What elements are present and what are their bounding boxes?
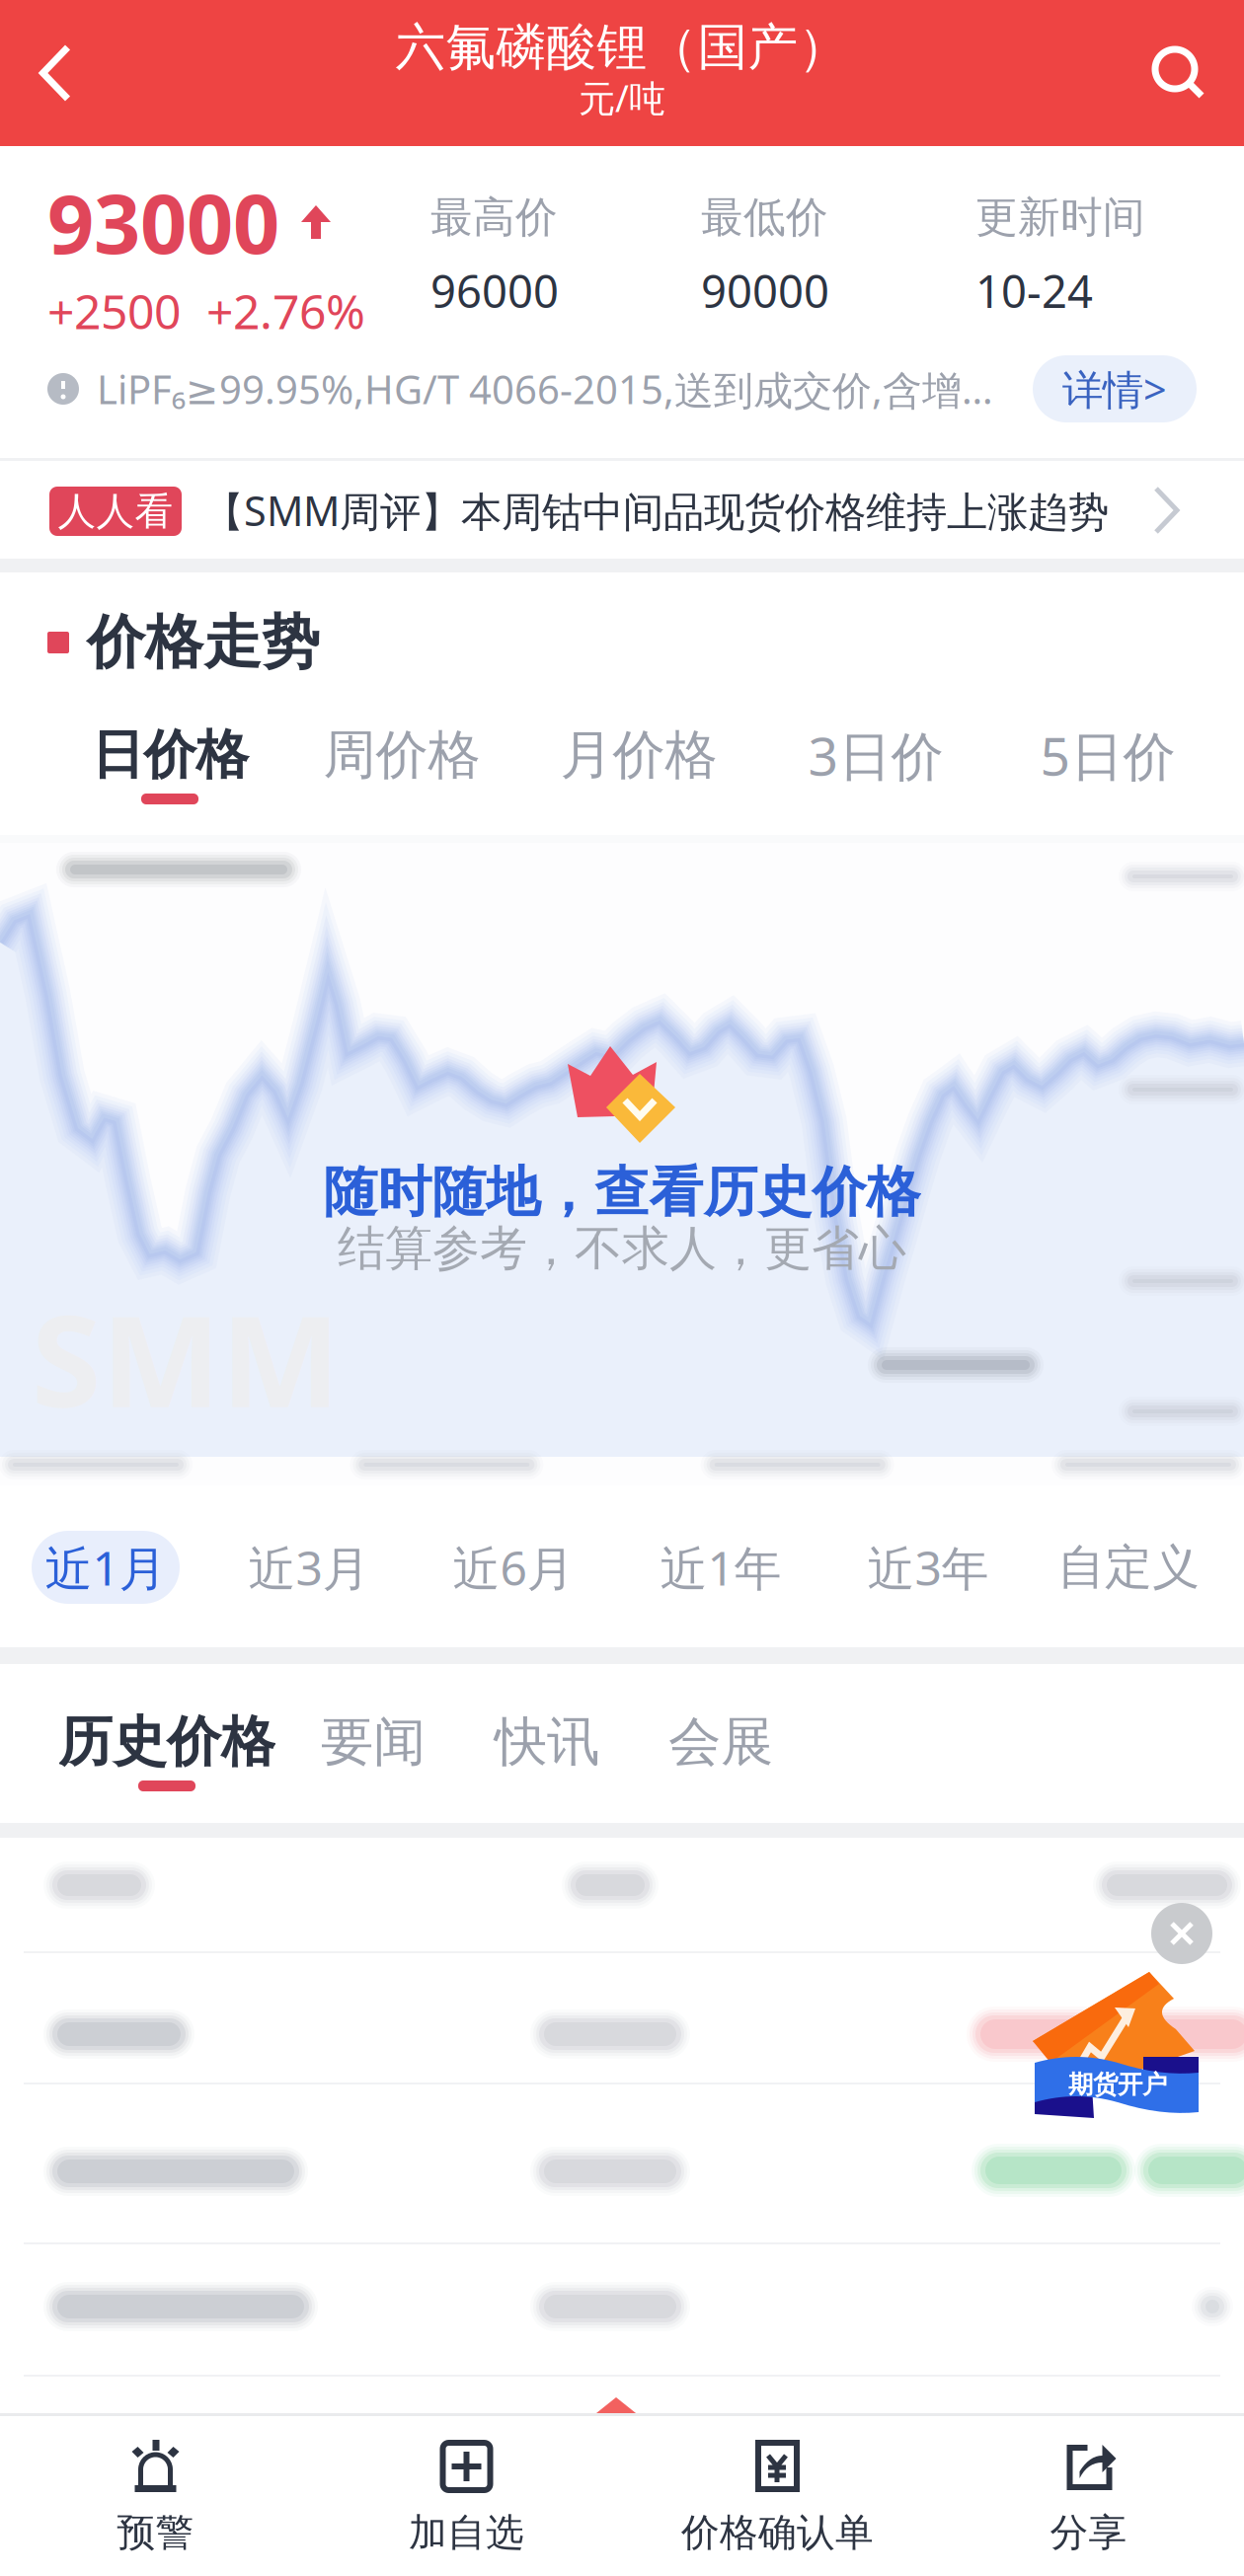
button[interactable]: 加自选 xyxy=(311,2416,622,2576)
staticText: 自定义 xyxy=(1057,1538,1200,1596)
staticText: 近6月 xyxy=(453,1536,574,1599)
staticText: 价格走势 xyxy=(87,607,320,678)
staticText: 预警 xyxy=(117,2509,194,2556)
button[interactable]: 分享 xyxy=(933,2416,1244,2576)
button[interactable]: 详情> xyxy=(1033,355,1197,422)
staticText: 近3年 xyxy=(867,1536,989,1599)
button[interactable]: 近3年 xyxy=(854,1531,1002,1604)
staticText: 历史价格 xyxy=(58,1709,275,1775)
button[interactable]: 月价格 xyxy=(530,726,747,811)
staticText: 元/吨 xyxy=(579,73,665,122)
staticText: 结算参考，不求人，更省心 xyxy=(338,1219,906,1278)
staticText: 10-24 xyxy=(975,261,1093,320)
staticText: +2500 xyxy=(47,279,181,342)
staticText: 5日价 xyxy=(1040,720,1175,790)
staticText: 月价格 xyxy=(560,723,717,787)
staticText: 要闻 xyxy=(321,1710,426,1774)
staticText: 价格确认单 xyxy=(681,2509,874,2556)
staticText: 六氟磷酸锂（国产） xyxy=(395,17,849,78)
staticText: 93000 xyxy=(47,168,279,276)
staticText: 【SMM周评】本周钴中间品现货价格维持上涨趋势 xyxy=(203,483,1109,537)
staticText: 最高价 xyxy=(430,191,558,243)
button[interactable]: 快讯 xyxy=(478,1713,616,1798)
button[interactable]: 3日价 xyxy=(767,726,984,811)
staticText: 近1月 xyxy=(45,1536,166,1599)
button[interactable]: Back xyxy=(0,0,111,146)
staticText: 加自选 xyxy=(409,2509,524,2556)
staticText: 人人看 xyxy=(58,488,173,535)
staticText: 周价格 xyxy=(323,723,480,787)
button[interactable]: 近6月 xyxy=(439,1531,587,1604)
staticText: 最低价 xyxy=(701,191,828,243)
staticText: 90000 xyxy=(701,261,829,320)
button[interactable]: 价格确认单 xyxy=(622,2416,933,2576)
staticText: 会展 xyxy=(668,1710,773,1774)
button[interactable]: 要闻 xyxy=(304,1713,442,1798)
button[interactable]: 近1月 xyxy=(32,1531,180,1604)
staticText: LiPF₆≥99.95%,HG/T 4066-2015,送到成交价,含增… xyxy=(97,363,993,415)
button[interactable]: Close ad xyxy=(1151,1903,1212,1964)
staticText: 期货开户 xyxy=(1068,2069,1167,2100)
staticText: 快讯 xyxy=(495,1710,599,1774)
staticText: 近3月 xyxy=(248,1536,370,1599)
staticText: 96000 xyxy=(430,261,559,320)
staticText: SMM xyxy=(32,1274,341,1442)
button[interactable]: 期货开户 promotion xyxy=(1033,1972,1201,2140)
button[interactable]: 会展 xyxy=(652,1713,790,1798)
staticText: +2.76% xyxy=(206,279,365,342)
button[interactable]: 日价格 xyxy=(61,726,278,811)
button[interactable]: 5日价 xyxy=(999,726,1216,811)
staticText: 详情> xyxy=(1062,362,1167,416)
staticText: 分享 xyxy=(1050,2509,1127,2556)
staticText: 日价格 xyxy=(91,723,248,787)
staticText: 3日价 xyxy=(808,720,943,790)
button[interactable]: 人人看 xyxy=(0,461,1244,559)
button[interactable]: 近3月 xyxy=(235,1531,383,1604)
staticText: 随时随地，查看历史价格 xyxy=(323,1159,921,1225)
button[interactable]: 历史价格 xyxy=(43,1713,290,1798)
staticText: 更新时间 xyxy=(975,191,1145,243)
button[interactable]: 预警 xyxy=(0,2416,311,2576)
button[interactable]: 自定义 xyxy=(1054,1531,1203,1604)
staticText: 近1年 xyxy=(660,1536,781,1599)
button[interactable]: Search xyxy=(1124,0,1234,146)
button[interactable]: 近1年 xyxy=(647,1531,795,1604)
button[interactable]: 周价格 xyxy=(293,726,510,811)
